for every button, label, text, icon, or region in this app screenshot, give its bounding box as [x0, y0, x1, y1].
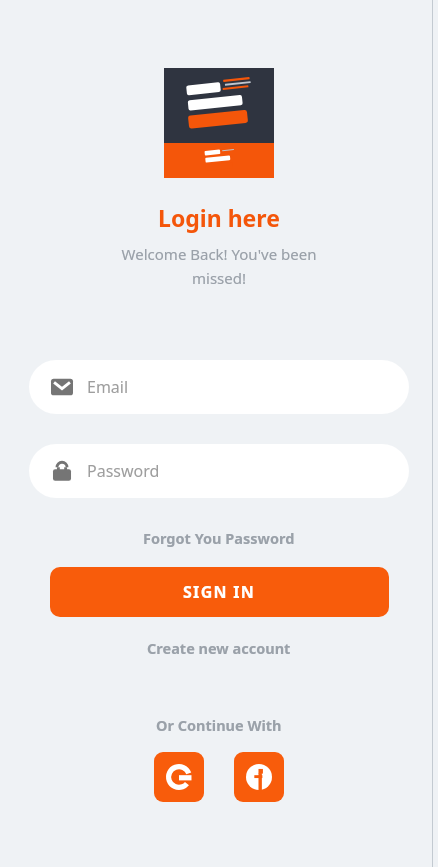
staticText: Password: [87, 460, 160, 482]
button[interactable]: SIGN IN: [50, 567, 389, 617]
staticText: Create new account: [147, 638, 291, 658]
button[interactable]: Continue with Google: [154, 752, 204, 802]
button[interactable]: Password: [29, 444, 409, 498]
button[interactable]: Create new account: [141, 635, 297, 661]
staticText: Welcome Back! You've been missed!: [103, 244, 335, 288]
staticText: Or Continue With: [156, 715, 282, 735]
button[interactable]: Forgot You Password: [137, 525, 301, 551]
button[interactable]: Email: [29, 360, 409, 414]
staticText: Login here: [158, 202, 280, 233]
staticText: Email: [87, 376, 129, 398]
staticText: Forgot You Password: [143, 528, 295, 548]
button[interactable]: Continue with Facebook: [234, 752, 284, 802]
staticText: SIGN IN: [183, 581, 256, 603]
